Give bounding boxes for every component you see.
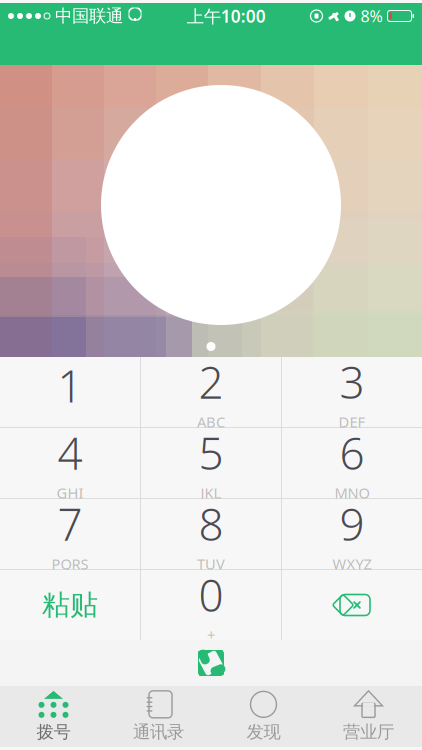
button[interactable]: 7 <box>0 499 140 569</box>
button[interactable]: 营业厅 <box>316 686 421 746</box>
staticText: 粘贴 <box>42 588 98 622</box>
button[interactable]: 2 <box>141 357 281 427</box>
staticText: ABC <box>197 412 225 431</box>
button[interactable]: 粘贴 <box>0 570 140 640</box>
staticText: 8 <box>198 494 223 553</box>
staticText: JKL <box>200 483 221 502</box>
staticText: 6 <box>339 423 364 482</box>
button[interactable]: 通讯录 <box>106 686 211 746</box>
staticText: PQRS <box>51 554 88 573</box>
staticText: 4 <box>57 423 82 482</box>
staticText: 发现 <box>246 721 280 743</box>
staticText: WXYZ <box>332 554 371 573</box>
staticText: 7 <box>57 494 82 553</box>
button[interactable]: 发现 <box>211 686 316 746</box>
staticText: 5 <box>198 423 223 482</box>
staticText: + <box>207 625 215 644</box>
staticText: MNO <box>334 483 369 502</box>
button[interactable]: 1 <box>0 357 140 427</box>
staticText: 营业厅 <box>343 721 394 743</box>
button[interactable]: 0 <box>141 570 281 640</box>
staticText: 拨号 <box>36 721 70 743</box>
button[interactable]: 拨号 <box>1 686 106 746</box>
button[interactable]: 4 <box>0 428 140 498</box>
staticText: 3 <box>339 352 364 411</box>
button[interactable]: 8 <box>141 499 281 569</box>
button[interactable]: 5 <box>141 428 281 498</box>
staticText: 上午10:00 <box>187 4 266 27</box>
staticText: 2 <box>198 352 223 411</box>
staticText: 0 <box>198 565 223 624</box>
button[interactable]: 6 <box>282 428 422 498</box>
staticText: 9 <box>339 494 364 553</box>
staticText: 8% <box>360 5 382 27</box>
button[interactable]: 拨打电话 <box>0 640 422 686</box>
staticText: 通讯录 <box>133 721 184 743</box>
staticText: GHI <box>56 483 83 502</box>
staticText: DEF <box>338 412 365 431</box>
button[interactable]: 3 <box>282 357 422 427</box>
staticText: TUV <box>197 554 225 573</box>
staticText: 1 <box>57 356 82 415</box>
button[interactable]: 9 <box>282 499 422 569</box>
staticText: 中国联通 <box>55 5 123 27</box>
button[interactable]: 删除 <box>282 570 422 640</box>
